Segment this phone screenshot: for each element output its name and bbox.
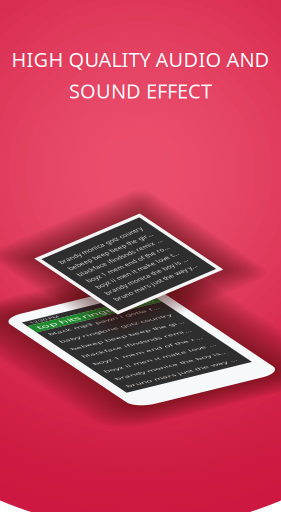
staticText: boyz 1 mem end of the road (13, 117, 98, 125)
staticText: baby ringtone gotz country (13, 63, 97, 71)
staticText: boyz 1 mem end of the road (12, 45, 100, 54)
staticText: blackface ifindsnds remix it card b (13, 99, 98, 107)
staticText: brandy monica the boy is mine (13, 153, 98, 161)
staticText: top hits ringtone official (12, 26, 99, 39)
staticText: HIGH QUALITY AUDIO AND (11, 46, 269, 73)
staticText: bebeep beep beep the gir rip (12, 23, 100, 32)
staticText: bruno mars just the way you are (13, 171, 98, 179)
staticText: boyz ii men it make love to you (13, 135, 98, 143)
staticText: black mp3 pawn i gotta feelin (13, 45, 98, 53)
staticText: SOUND EFFECT (69, 78, 212, 104)
staticText: brandy monica the boy is mine (12, 67, 100, 76)
staticText: blackface ifindsnds remix it card b (12, 34, 100, 43)
staticText: boyz ii men it make love to you (12, 56, 100, 65)
staticText: bebeep beep beep the gir rip (13, 81, 98, 89)
staticText: bruno mars just the way you are (12, 78, 100, 87)
